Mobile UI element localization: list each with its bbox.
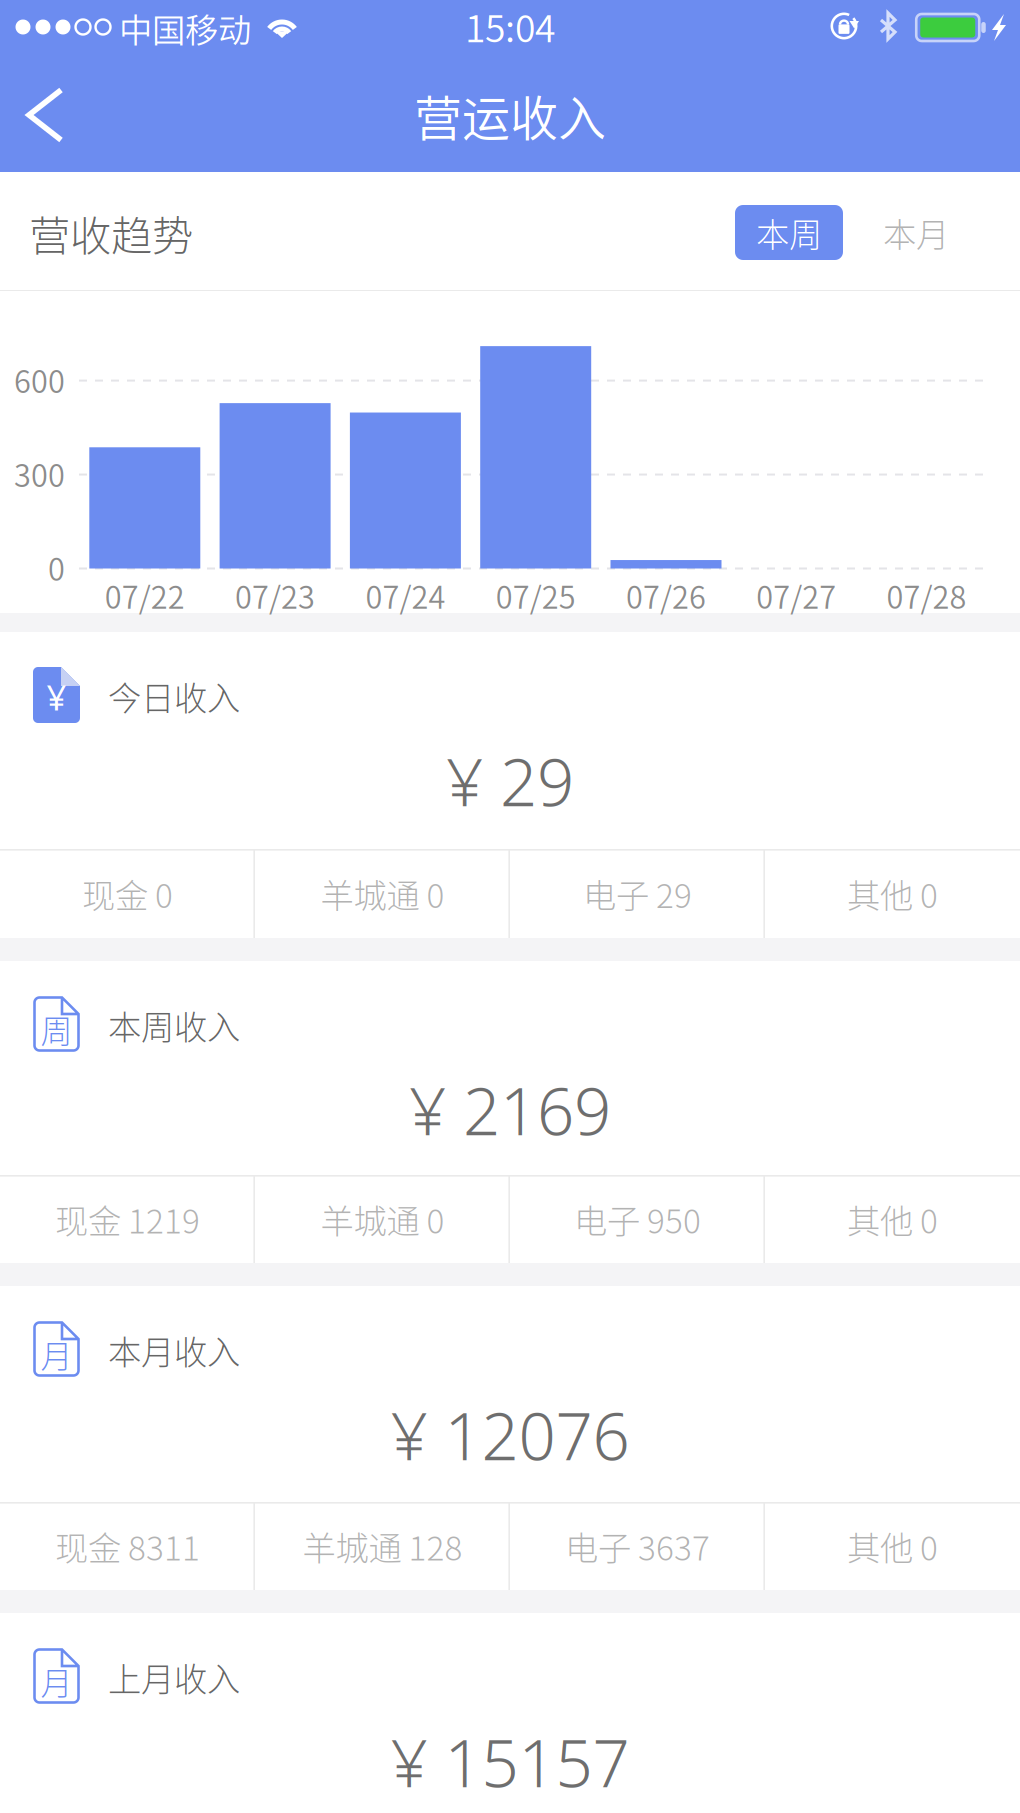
button[interactable]: 现金 1219 (0, 1175, 255, 1263)
staticText: ¥ 12076 (390, 1390, 629, 1479)
staticText: 300 (14, 451, 65, 496)
staticText: 本月收入 (108, 1326, 240, 1374)
staticText: 中国移动 (119, 4, 251, 52)
button[interactable]: ¥ (0, 632, 1020, 849)
staticText: 月 (40, 1331, 72, 1377)
staticText: 电子 950 (574, 1195, 701, 1243)
staticText: 现金 0 (82, 869, 173, 918)
button[interactable]: 羊城通 0 (255, 849, 510, 938)
staticText: 本周 (756, 208, 822, 257)
staticText: 07/24 (365, 573, 445, 618)
staticText: 月 (40, 1658, 72, 1704)
button[interactable]: 其他 0 (765, 1502, 1020, 1590)
staticText: 电子 3637 (565, 1522, 710, 1570)
button[interactable]: 本周 (735, 205, 843, 260)
staticText: 15:04 (465, 0, 555, 53)
staticText: 今日收入 (108, 672, 240, 720)
staticText: 羊城通 0 (320, 869, 444, 918)
staticText: 其他 0 (847, 1522, 938, 1570)
staticText: 0 (48, 545, 65, 590)
staticText: 其他 0 (847, 869, 938, 918)
staticText: 07/26 (626, 573, 706, 618)
staticText: 上月收入 (108, 1653, 240, 1701)
staticText: ¥ (46, 673, 66, 721)
staticText: 现金 8311 (55, 1522, 200, 1570)
staticText: 营收趋势 (29, 203, 193, 263)
staticText: 羊城通 128 (302, 1522, 462, 1570)
staticText: 07/25 (496, 573, 576, 618)
button[interactable]: 其他 0 (765, 849, 1020, 938)
staticText: ¥ 15157 (390, 1717, 629, 1806)
staticText: 07/27 (756, 573, 836, 618)
button[interactable]: 周 (0, 961, 1020, 1175)
button[interactable]: 月 (0, 1286, 1020, 1502)
staticText: 本周收入 (108, 1001, 240, 1049)
button[interactable]: 月 (0, 1613, 1020, 1813)
staticText: 600 (14, 357, 65, 402)
staticText: 其他 0 (847, 1195, 938, 1243)
staticText: 07/28 (887, 573, 967, 618)
button[interactable]: 现金 0 (0, 849, 255, 938)
button[interactable]: 电子 29 (510, 849, 765, 938)
button[interactable]: 羊城通 128 (255, 1502, 510, 1590)
staticText: 羊城通 0 (320, 1195, 444, 1243)
button[interactable]: Back (0, 61, 95, 169)
button[interactable]: 电子 3637 (510, 1502, 765, 1590)
staticText: 电子 29 (583, 869, 692, 918)
button[interactable]: 其他 0 (765, 1175, 1020, 1263)
button[interactable]: 本月 (862, 205, 970, 260)
staticText: 营运收入 (414, 80, 606, 150)
button[interactable]: 电子 950 (510, 1175, 765, 1263)
button[interactable]: 现金 8311 (0, 1502, 255, 1590)
staticText: ¥ 2169 (409, 1065, 611, 1154)
staticText: 07/23 (235, 573, 315, 618)
staticText: 07/22 (105, 573, 185, 618)
staticText: 本月 (883, 208, 949, 257)
staticText: ¥ 29 (446, 736, 574, 825)
button[interactable]: 羊城通 0 (255, 1175, 510, 1263)
staticText: 周 (40, 1006, 72, 1052)
staticText: 现金 1219 (55, 1195, 200, 1243)
